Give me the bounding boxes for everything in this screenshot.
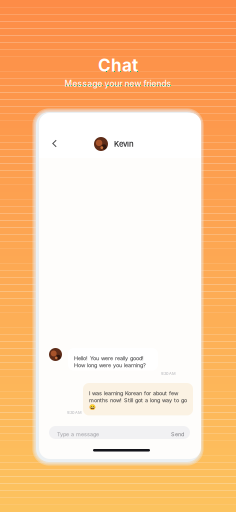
staticText: Kevin: [114, 139, 134, 149]
staticText: Send: [171, 431, 184, 437]
button[interactable]: Back: [48, 136, 60, 150]
staticText: 9:30AM: [67, 410, 82, 415]
staticText: Message your new friends: [64, 79, 171, 89]
staticText: Hello! You were really good! How long we…: [74, 355, 146, 369]
staticText: Type a message: [57, 431, 99, 437]
button[interactable]: Kevin: [94, 137, 134, 151]
staticText: I was learning Korean for about few mont…: [89, 390, 187, 410]
staticText: 9:30AM: [161, 371, 176, 376]
staticText: Chat: [98, 55, 138, 76]
button[interactable]: Type a message: [49, 426, 190, 439]
